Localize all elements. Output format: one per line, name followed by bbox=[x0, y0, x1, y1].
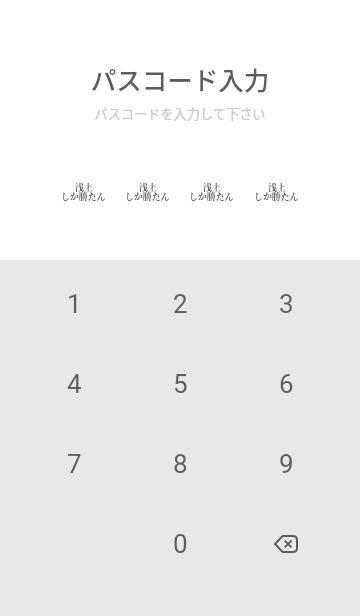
staticText: 1 bbox=[67, 289, 82, 319]
staticText: 6 bbox=[279, 369, 294, 399]
staticText: 8 bbox=[173, 449, 188, 479]
staticText: 浅上 bbox=[75, 181, 93, 194]
button[interactable]: 0 bbox=[127, 504, 233, 584]
button[interactable]: 9 bbox=[233, 424, 339, 504]
button[interactable]: 7 bbox=[21, 424, 127, 504]
staticText: 5 bbox=[173, 369, 188, 399]
staticText: 浅上 bbox=[203, 181, 221, 194]
staticText: 7 bbox=[67, 449, 82, 479]
button[interactable]: 3 bbox=[233, 264, 339, 344]
staticText: 3 bbox=[279, 289, 294, 319]
button[interactable]: Delete bbox=[233, 504, 339, 584]
staticText: 4 bbox=[67, 369, 82, 399]
button[interactable]: 5 bbox=[127, 344, 233, 424]
staticText: 0 bbox=[173, 529, 188, 559]
staticText: しか勝たん bbox=[189, 190, 234, 203]
staticText: 9 bbox=[279, 449, 294, 479]
button[interactable]: 8 bbox=[127, 424, 233, 504]
staticText: しか勝たん bbox=[125, 190, 170, 203]
staticText: 2 bbox=[173, 289, 188, 319]
button[interactable]: 6 bbox=[233, 344, 339, 424]
staticText: 浅上 bbox=[139, 181, 157, 194]
other: Delete bbox=[266, 524, 306, 564]
staticText: 浅上 bbox=[268, 181, 286, 194]
button[interactable]: 4 bbox=[21, 344, 127, 424]
staticText: パスコードを入力して下さい bbox=[0, 104, 360, 123]
staticText: パスコード入力 bbox=[0, 60, 360, 97]
staticText: しか勝たん bbox=[61, 190, 106, 203]
staticText: しか勝たん bbox=[254, 190, 299, 203]
button[interactable]: 2 bbox=[127, 264, 233, 344]
button[interactable]: 1 bbox=[21, 264, 127, 344]
